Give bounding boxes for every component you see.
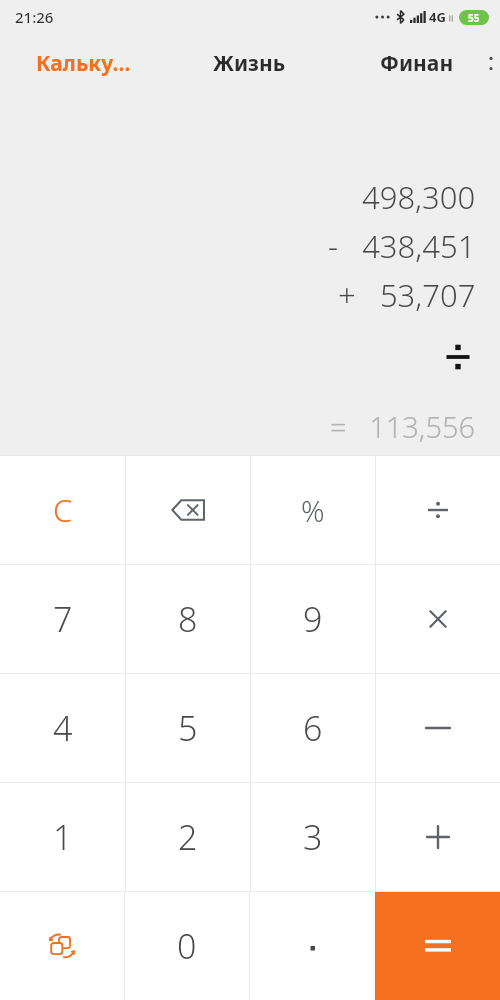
staticText: 4 xyxy=(53,705,73,751)
staticText: 6 xyxy=(303,705,323,751)
button[interactable]: Equals xyxy=(375,892,500,1000)
staticText: 498,300 xyxy=(362,176,476,218)
staticText: Жизнь xyxy=(213,49,286,78)
button[interactable]: Unit converter xyxy=(0,892,124,1000)
button[interactable]: Minus xyxy=(376,674,500,782)
button[interactable]: 8 xyxy=(126,565,250,673)
button[interactable]: 7 xyxy=(0,565,125,673)
button[interactable]: 1 xyxy=(0,783,125,891)
staticText: % xyxy=(301,491,325,530)
staticText: Финан xyxy=(380,49,454,78)
staticText: 7 xyxy=(53,596,73,642)
staticText: 3 xyxy=(303,814,323,860)
button[interactable]: 0 xyxy=(125,892,249,1000)
staticText: 5 xyxy=(178,705,198,751)
button[interactable]: Финан xyxy=(333,34,500,92)
staticText: 8 xyxy=(178,596,198,642)
staticText: C xyxy=(53,489,73,531)
staticText: - 438,451 xyxy=(328,225,476,267)
button[interactable]: Clear xyxy=(0,456,125,564)
button[interactable]: Кальку… xyxy=(0,34,166,92)
staticText: Кальку… xyxy=(36,49,131,78)
staticText: 2 xyxy=(178,814,198,860)
staticText: 9 xyxy=(303,596,323,642)
staticText: 4G xyxy=(429,8,446,26)
button[interactable]: 2 xyxy=(126,783,250,891)
staticText: 0 xyxy=(177,923,197,969)
button[interactable]: Divide xyxy=(376,456,500,564)
button[interactable]: 4 xyxy=(0,674,125,782)
staticText: 55 xyxy=(468,11,480,25)
staticText: 1 xyxy=(53,814,73,860)
button[interactable]: Multiply xyxy=(376,565,500,673)
staticText: = 113,556 xyxy=(330,407,476,446)
button[interactable]: Percent xyxy=(251,456,375,564)
button[interactable]: Backspace xyxy=(126,456,250,564)
button[interactable]: Plus xyxy=(376,783,500,891)
staticText: + 53,707 xyxy=(338,274,476,316)
button[interactable]: 5 xyxy=(126,674,250,782)
button[interactable]: 3 xyxy=(251,783,375,891)
button[interactable]: 6 xyxy=(251,674,375,782)
button[interactable]: Жизнь xyxy=(166,34,333,92)
button[interactable]: Decimal point xyxy=(250,892,375,1000)
button[interactable]: More options xyxy=(482,34,500,92)
button[interactable]: 9 xyxy=(251,565,375,673)
staticText: 21:26 xyxy=(15,7,54,27)
